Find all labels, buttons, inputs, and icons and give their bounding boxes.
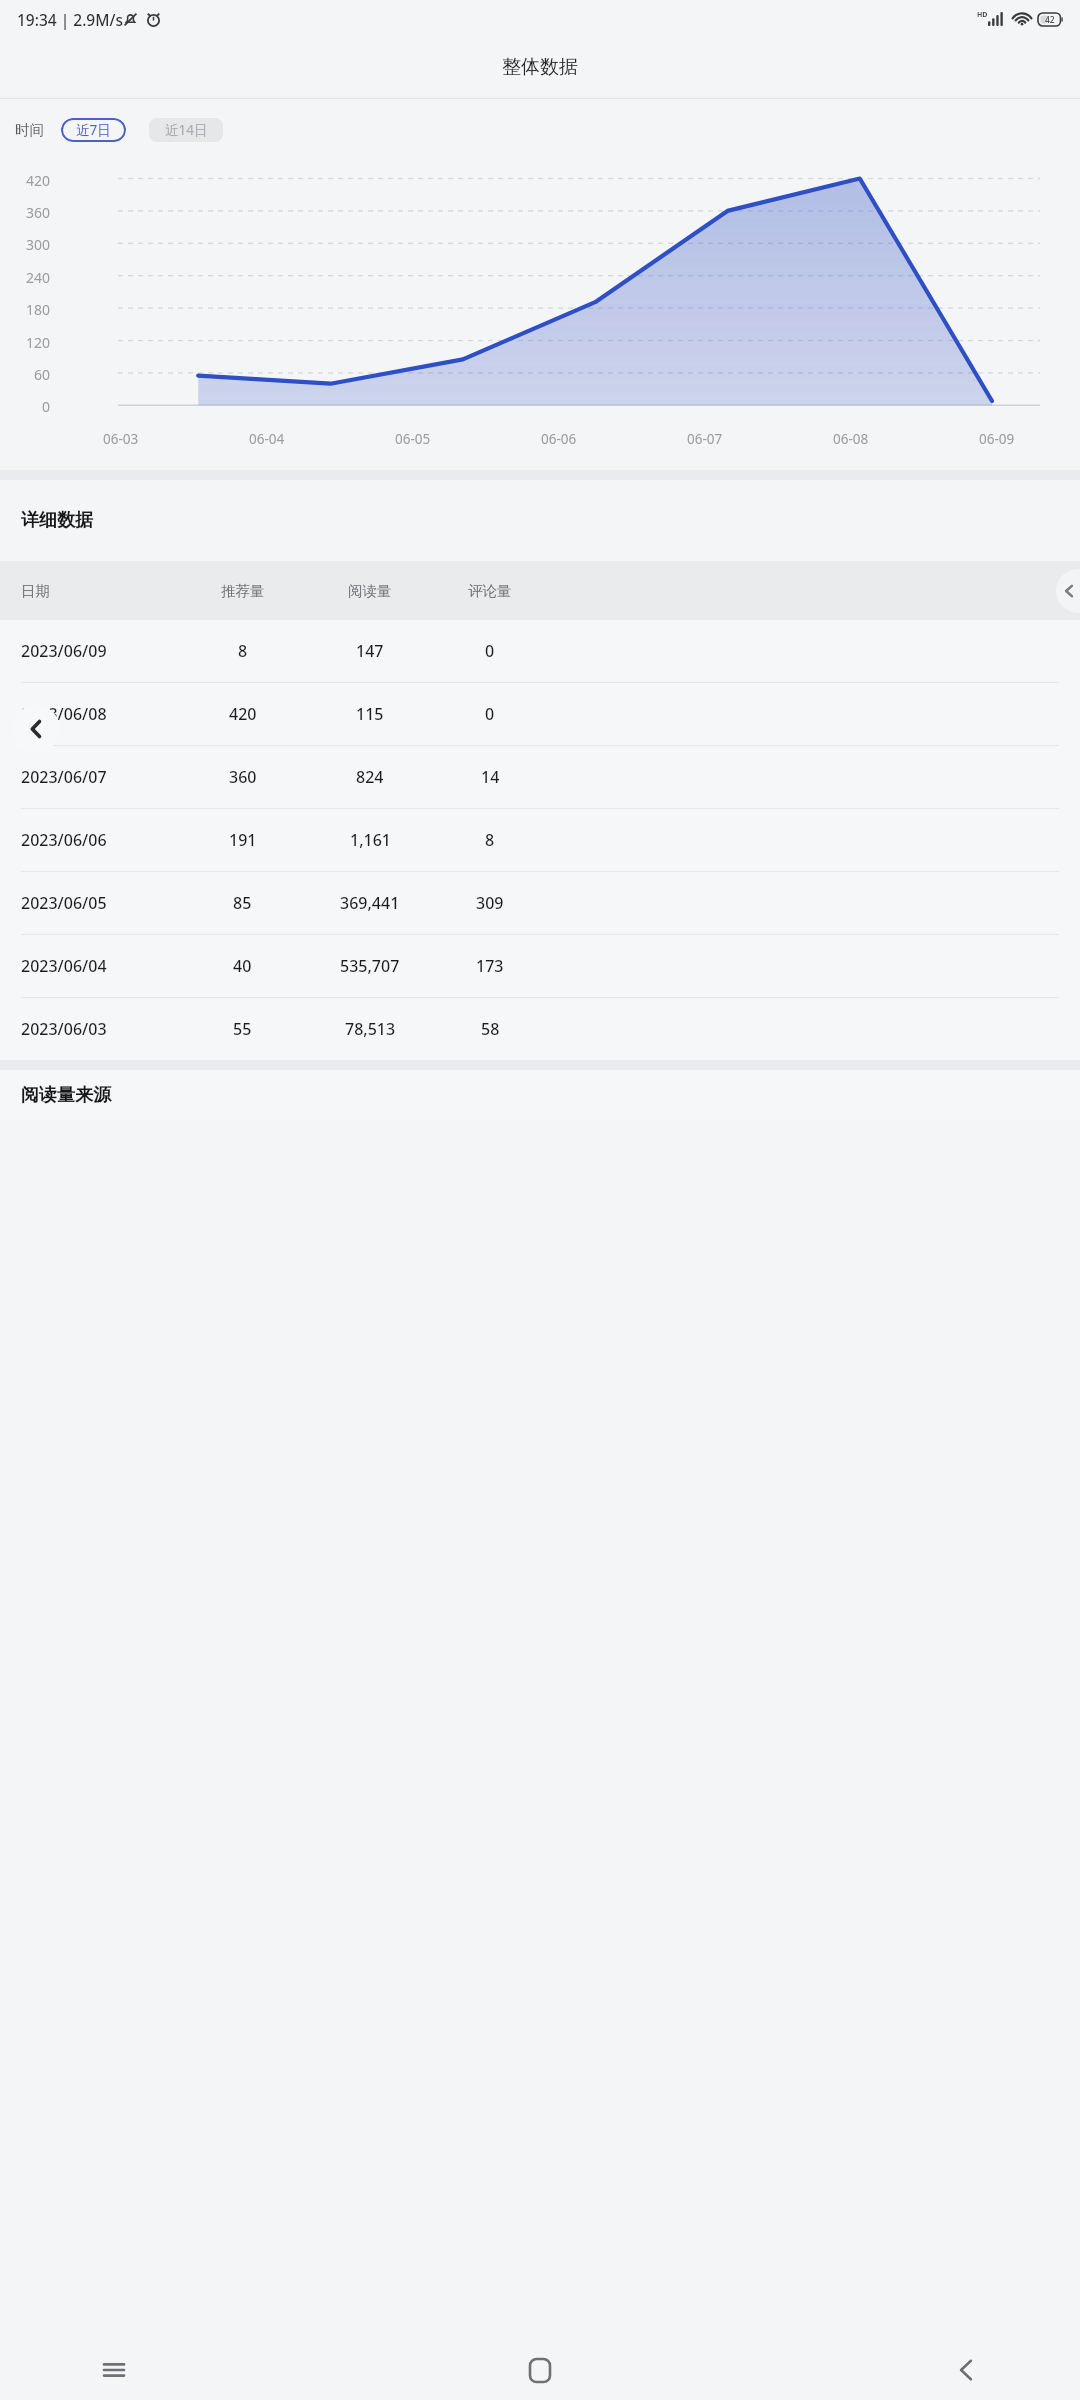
staticText: 日期 (21, 582, 50, 600)
staticText: 115 (356, 703, 384, 725)
button[interactable]: Recents (90, 2346, 138, 2394)
staticText: 0 (485, 640, 495, 662)
staticText: 06-04 (249, 430, 285, 448)
staticText: 240 (0, 268, 50, 287)
staticText: 06-07 (687, 430, 723, 448)
button[interactable]: Scroll columns (1056, 569, 1080, 613)
staticText: 173 (476, 955, 504, 977)
staticText: 180 (0, 300, 50, 319)
button[interactable]: 2023/06/03 (0, 998, 1080, 1060)
button[interactable]: 2023/06/06 (0, 809, 1080, 871)
staticText: 19:34 | 2.9M/s (17, 9, 123, 30)
staticText: 整体数据 (502, 55, 578, 79)
staticText: 14 (481, 766, 500, 788)
staticText: 06-08 (833, 430, 869, 448)
staticText: HD (977, 10, 988, 20)
staticText: 535,707 (340, 955, 400, 977)
button[interactable]: 2023/06/08 (0, 683, 1080, 745)
staticText: 0 (485, 703, 495, 725)
staticText: 55 (233, 1018, 252, 1040)
staticText: 85 (233, 892, 252, 914)
staticText: 78,513 (345, 1018, 396, 1040)
staticText: 420 (229, 703, 257, 725)
staticText: 147 (356, 640, 384, 662)
staticText: 369,441 (340, 892, 400, 914)
staticText: 近7日 (76, 121, 111, 139)
staticText: 06-09 (979, 430, 1015, 448)
button[interactable]: Home (516, 2346, 564, 2394)
staticText: 58 (481, 1018, 500, 1040)
button[interactable]: Back (942, 2346, 990, 2394)
staticText: 40 (233, 955, 252, 977)
staticText: 2023/06/09 (21, 640, 107, 662)
staticText: 120 (0, 333, 50, 352)
staticText: 360 (229, 766, 257, 788)
staticText: 360 (0, 203, 50, 222)
staticText: 06-06 (541, 430, 577, 448)
staticText: 60 (0, 365, 50, 384)
staticText: 8 (238, 640, 248, 662)
button[interactable]: 2023/06/04 (0, 935, 1080, 997)
staticText: 0 (0, 397, 50, 416)
staticText: 推荐量 (221, 582, 265, 600)
staticText: 2023/06/05 (21, 892, 107, 914)
staticText: 1,161 (350, 829, 391, 851)
staticText: 420 (0, 171, 50, 190)
staticText: 2023/06/08 (21, 703, 107, 725)
staticText: 阅读量来源 (21, 1084, 111, 1107)
staticText: 309 (476, 892, 504, 914)
staticText: 8 (485, 829, 495, 851)
button[interactable]: Back (12, 705, 60, 753)
staticText: 时间 (15, 121, 44, 139)
button[interactable]: 2023/06/09 (0, 620, 1080, 682)
staticText: 阅读量 (348, 582, 392, 600)
button[interactable]: 近7日 (61, 118, 126, 142)
staticText: 06-05 (395, 430, 431, 448)
staticText: 191 (229, 829, 257, 851)
staticText: 近14日 (165, 121, 208, 139)
staticText: 评论量 (468, 582, 512, 600)
staticText: 42 (1045, 14, 1055, 26)
staticText: 2023/06/07 (21, 766, 107, 788)
button[interactable]: 近14日 (149, 118, 223, 142)
staticText: 06-03 (103, 430, 139, 448)
staticText: 2023/06/06 (21, 829, 107, 851)
staticText: 824 (356, 766, 384, 788)
staticText: 2023/06/04 (21, 955, 107, 977)
button[interactable]: 2023/06/05 (0, 872, 1080, 934)
button[interactable]: 2023/06/07 (0, 746, 1080, 808)
staticText: 详细数据 (21, 509, 93, 532)
staticText: 300 (0, 235, 50, 254)
staticText: 2023/06/03 (21, 1018, 107, 1040)
